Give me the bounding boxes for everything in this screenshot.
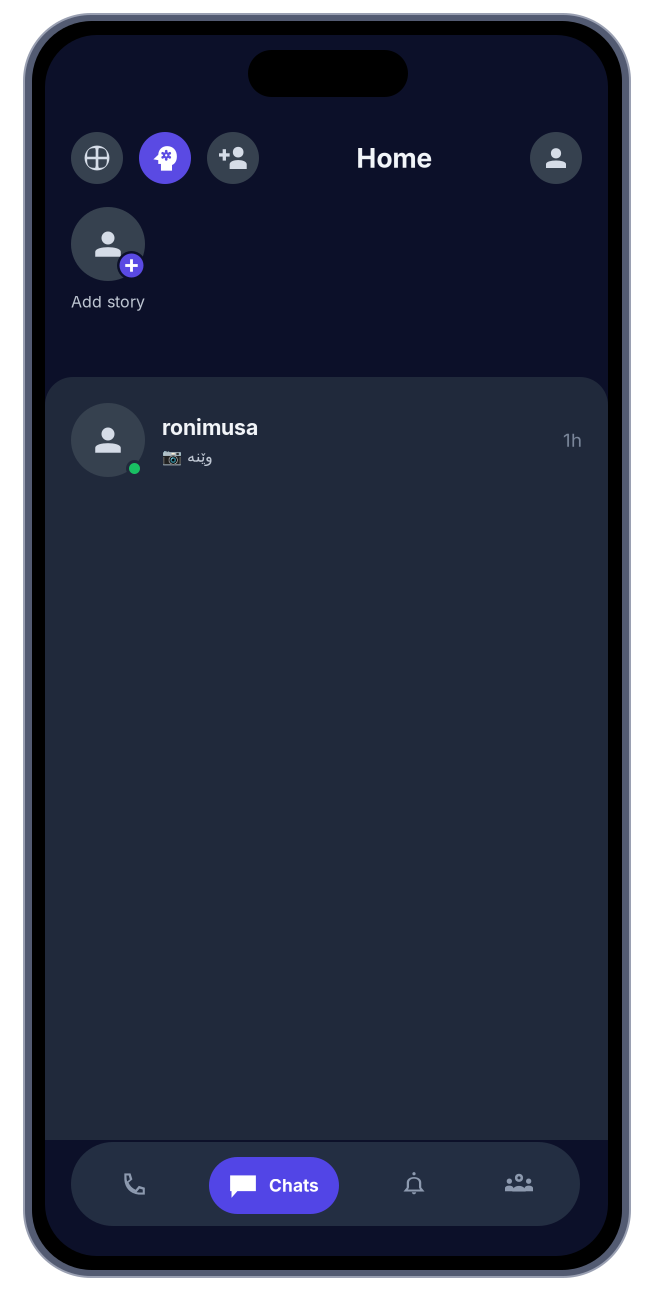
staticText: ‎📷 وێنه‌ <box>162 446 213 466</box>
button[interactable]: Add contact <box>207 132 259 184</box>
staticText: Add story <box>71 292 145 311</box>
button[interactable]: Add story <box>45 207 608 311</box>
button[interactable]: ronimusa <box>45 391 608 489</box>
staticText: 1h <box>563 429 582 451</box>
button[interactable]: Explore <box>71 132 123 184</box>
button[interactable]: Chats <box>209 1157 339 1214</box>
staticText: Home <box>356 142 432 174</box>
button[interactable]: Groups <box>483 1148 555 1220</box>
staticText: ronimusa <box>162 414 258 440</box>
button[interactable]: Calls <box>98 1148 170 1220</box>
button[interactable]: Notifications <box>378 1148 450 1220</box>
button[interactable]: Profile <box>530 132 582 184</box>
button[interactable]: AI assistant <box>139 132 191 184</box>
staticText: Chats <box>269 1175 319 1196</box>
